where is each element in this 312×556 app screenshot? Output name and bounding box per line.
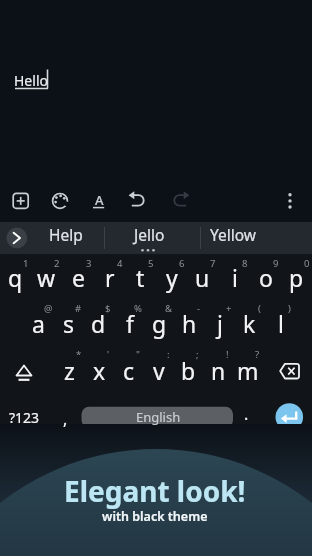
staticText: $: [105, 302, 111, 314]
staticText: 7: [210, 257, 216, 269]
staticText: ?: [255, 348, 260, 360]
staticText: ,: [63, 408, 68, 430]
button[interactable]: s: [53, 303, 84, 343]
staticText: r: [105, 262, 115, 293]
staticText: 2: [54, 257, 60, 269]
button[interactable]: i: [219, 257, 250, 297]
staticText: Elegant look!: [64, 472, 246, 510]
button[interactable]: [4, 226, 30, 250]
staticText: a: [32, 308, 45, 339]
button[interactable]: [47, 188, 73, 214]
staticText: 3: [86, 257, 92, 269]
staticText: v: [153, 355, 165, 386]
button[interactable]: [6, 352, 42, 386]
staticText: z: [64, 355, 75, 386]
button[interactable]: [166, 188, 192, 214]
staticText: f: [126, 308, 134, 339]
staticText: Hello: [14, 71, 48, 90]
button[interactable]: f: [114, 303, 145, 343]
button[interactable]: [272, 400, 306, 434]
staticText: l: [278, 308, 284, 339]
button[interactable]: r: [94, 257, 125, 297]
button[interactable]: w: [31, 257, 62, 297]
staticText: i: [232, 262, 238, 293]
staticText: 9: [273, 257, 279, 269]
staticText: (: [258, 302, 261, 314]
button[interactable]: ?123: [2, 403, 46, 431]
staticText: u: [195, 262, 210, 293]
staticText: s: [63, 308, 75, 339]
button[interactable]: [272, 352, 308, 386]
staticText: e: [72, 262, 85, 293]
staticText: 1: [23, 257, 29, 269]
button[interactable]: ,: [55, 405, 75, 433]
button[interactable]: p: [281, 257, 312, 297]
staticText: q: [8, 262, 23, 293]
button[interactable]: m: [232, 350, 263, 390]
staticText: 6: [179, 257, 185, 269]
button[interactable]: [86, 188, 112, 214]
staticText: .: [244, 403, 249, 425]
button[interactable]: u: [187, 257, 218, 297]
staticText: -: [197, 302, 201, 314]
staticText: +: [226, 302, 232, 314]
staticText: w: [37, 262, 56, 293]
staticText: t: [136, 262, 145, 293]
staticText: 8: [242, 257, 248, 269]
button[interactable]: v: [143, 350, 174, 390]
staticText: ): [288, 302, 291, 314]
staticText: !: [226, 348, 229, 360]
staticText: m: [237, 355, 259, 386]
button[interactable]: z: [54, 350, 85, 390]
button[interactable]: Jello: [119, 221, 179, 247]
staticText: 5: [148, 257, 154, 269]
button[interactable]: b: [173, 350, 204, 390]
staticText: d: [91, 308, 106, 339]
button[interactable]: c: [113, 350, 144, 390]
staticText: n: [211, 355, 226, 386]
staticText: h: [182, 308, 197, 339]
button[interactable]: Yellow: [203, 221, 263, 247]
button[interactable]: t: [125, 257, 156, 297]
button[interactable]: y: [156, 257, 187, 297]
button[interactable]: [278, 188, 302, 214]
button[interactable]: j: [204, 303, 235, 343]
staticText: j: [217, 308, 223, 339]
staticText: Jello: [134, 224, 165, 245]
staticText: %: [134, 302, 142, 314]
button[interactable]: e: [63, 257, 94, 297]
staticText: ': [107, 348, 110, 360]
button[interactable]: a: [23, 303, 54, 343]
button[interactable]: l: [265, 303, 296, 343]
button[interactable]: d: [83, 303, 114, 343]
staticText: Help: [49, 224, 83, 245]
button[interactable]: n: [203, 350, 234, 390]
button[interactable]: Help: [36, 221, 96, 247]
staticText: &: [165, 302, 172, 314]
button[interactable]: [124, 188, 150, 214]
staticText: ;: [196, 348, 199, 360]
staticText: 0: [304, 257, 310, 269]
button[interactable]: x: [84, 350, 115, 390]
button[interactable]: h: [174, 303, 205, 343]
button[interactable]: [8, 188, 34, 214]
staticText: b: [181, 355, 196, 386]
staticText: x: [93, 355, 106, 386]
staticText: o: [259, 262, 273, 293]
button[interactable]: English: [88, 405, 228, 429]
staticText: g: [152, 308, 167, 339]
staticText: :: [167, 348, 170, 360]
staticText: p: [289, 262, 304, 293]
button[interactable]: .: [236, 400, 256, 428]
button[interactable]: k: [234, 303, 265, 343]
button[interactable]: g: [144, 303, 175, 343]
staticText: English: [136, 408, 181, 426]
staticText: ": [136, 348, 140, 360]
button[interactable]: o: [250, 257, 281, 297]
staticText: Yellow: [210, 224, 256, 245]
staticText: c: [123, 355, 135, 386]
staticText: k: [243, 308, 256, 339]
button[interactable]: q: [0, 257, 31, 297]
staticText: A: [95, 191, 104, 209]
staticText: #: [75, 302, 82, 314]
